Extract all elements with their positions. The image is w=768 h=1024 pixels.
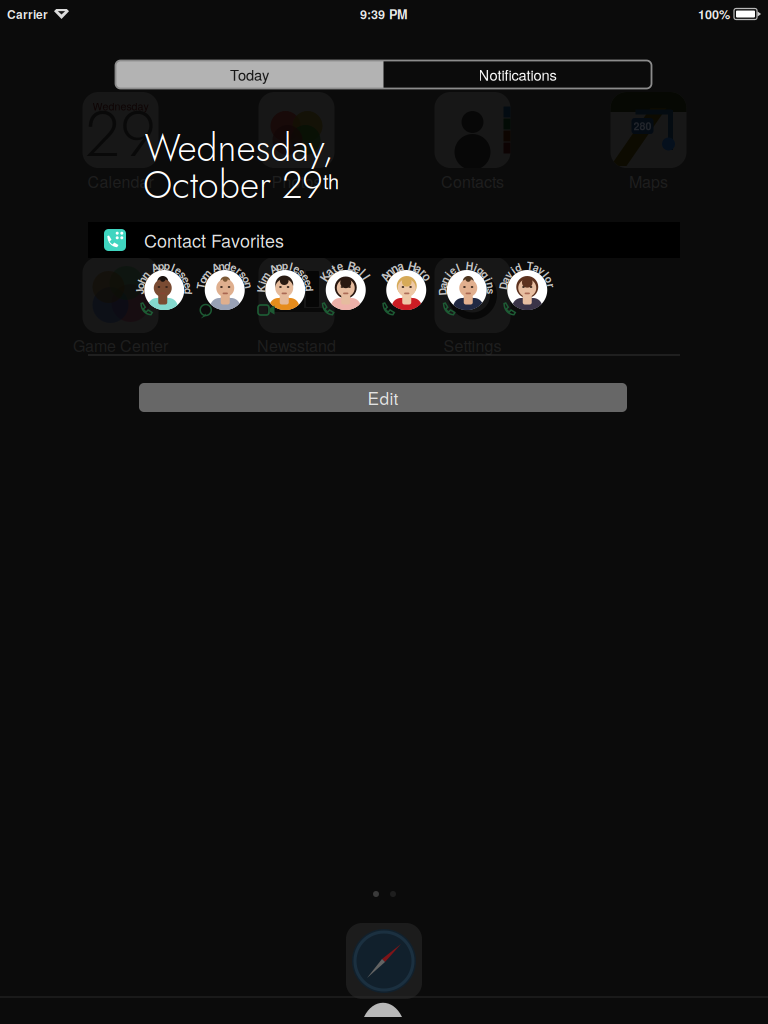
staticText: T xyxy=(527,258,534,273)
staticText: y xyxy=(539,263,545,278)
staticText: Edit xyxy=(367,385,398,410)
staticText: A xyxy=(151,260,159,275)
staticText: p xyxy=(276,259,283,274)
staticText: Settings xyxy=(443,333,501,356)
button[interactable]: K xyxy=(315,253,376,327)
button[interactable]: Edit xyxy=(139,383,627,412)
staticText: a xyxy=(502,272,508,287)
staticText: Carrier xyxy=(7,5,48,23)
staticText: e xyxy=(294,261,300,276)
staticText: Maps xyxy=(629,169,668,192)
staticText: Photos xyxy=(271,169,321,192)
staticText: i xyxy=(487,272,490,287)
staticText: d xyxy=(306,281,313,296)
staticText: l xyxy=(361,264,364,280)
staticText xyxy=(462,258,465,273)
staticText: Game Center xyxy=(73,333,168,356)
staticText: a xyxy=(397,258,403,274)
staticText: g xyxy=(482,267,489,282)
button[interactable]: T xyxy=(194,253,255,327)
staticText xyxy=(405,257,408,274)
staticText xyxy=(148,263,151,278)
staticText: p xyxy=(158,258,165,273)
staticText: o xyxy=(423,269,430,285)
staticText: A xyxy=(381,269,389,285)
staticText: i xyxy=(446,267,449,282)
staticText: Notifications xyxy=(478,64,556,85)
staticText: o xyxy=(137,278,144,293)
staticText: a xyxy=(533,260,539,275)
staticText: a xyxy=(415,260,421,277)
button[interactable]: D xyxy=(497,253,557,327)
staticText: l xyxy=(365,269,368,285)
staticText: th xyxy=(323,166,339,195)
staticText: l xyxy=(456,260,459,275)
button[interactable]: Notifications xyxy=(383,60,651,88)
staticText: Newsstand xyxy=(257,333,336,356)
staticText: Wednesday, xyxy=(144,121,333,175)
staticText: r xyxy=(421,264,425,280)
staticText: g xyxy=(478,263,485,278)
staticText: v xyxy=(505,267,511,282)
staticText: m xyxy=(260,269,269,284)
staticText: r xyxy=(549,278,553,293)
staticText: i xyxy=(260,275,263,290)
button[interactable]: A xyxy=(376,253,436,327)
staticText: s xyxy=(488,284,494,299)
staticText: a xyxy=(440,278,446,293)
staticText: o xyxy=(199,272,206,287)
staticText: n xyxy=(142,267,149,282)
staticText: 29 xyxy=(85,88,156,180)
staticText: s xyxy=(299,264,305,280)
staticText: d xyxy=(515,260,522,275)
staticText: A xyxy=(269,261,277,276)
staticText: Today xyxy=(230,64,269,85)
staticText xyxy=(523,258,526,273)
staticText xyxy=(267,264,270,280)
staticText: s xyxy=(180,267,186,282)
staticText: H xyxy=(408,258,416,274)
staticText: Calendar xyxy=(87,169,153,192)
staticText: J xyxy=(137,284,143,299)
staticText: p xyxy=(164,258,171,273)
staticText: n xyxy=(386,264,393,280)
staticText: s xyxy=(241,267,247,282)
staticText: K xyxy=(257,281,265,296)
staticText: A xyxy=(212,260,220,275)
button[interactable]: K xyxy=(255,253,315,327)
staticText: e xyxy=(355,260,361,277)
staticText: e xyxy=(183,272,189,287)
staticText: d xyxy=(224,258,231,273)
staticText: e xyxy=(176,263,182,278)
staticText: h xyxy=(139,272,146,287)
staticText xyxy=(344,257,347,274)
staticText: p xyxy=(282,258,289,273)
staticText: e xyxy=(305,275,311,290)
staticText: B xyxy=(348,258,356,274)
button[interactable]: D xyxy=(436,253,497,327)
staticText: D xyxy=(438,284,446,299)
staticText: o xyxy=(546,272,553,287)
button[interactable]: Today xyxy=(115,60,383,88)
staticText: e xyxy=(337,258,343,274)
staticText: r xyxy=(237,263,241,278)
staticText: t xyxy=(332,260,336,277)
staticText: T xyxy=(197,278,204,293)
button[interactable]: J xyxy=(134,253,194,327)
staticText: K xyxy=(321,269,329,285)
staticText: a xyxy=(326,264,332,280)
staticText: n xyxy=(391,260,398,277)
staticText: Wednesday xyxy=(92,98,148,114)
staticText: 280 xyxy=(633,118,651,134)
staticText: 100% xyxy=(698,5,730,23)
staticText: n xyxy=(218,258,225,273)
staticText: n xyxy=(487,278,494,293)
staticText: o xyxy=(243,272,250,287)
staticText: October 29 xyxy=(143,158,323,212)
staticText: H xyxy=(466,258,474,273)
staticText: i xyxy=(511,263,514,278)
staticText: Contact Favorites xyxy=(144,227,284,253)
staticText: 9:39 PM xyxy=(360,5,408,23)
staticText: e xyxy=(303,269,309,284)
staticText: e xyxy=(449,263,455,278)
